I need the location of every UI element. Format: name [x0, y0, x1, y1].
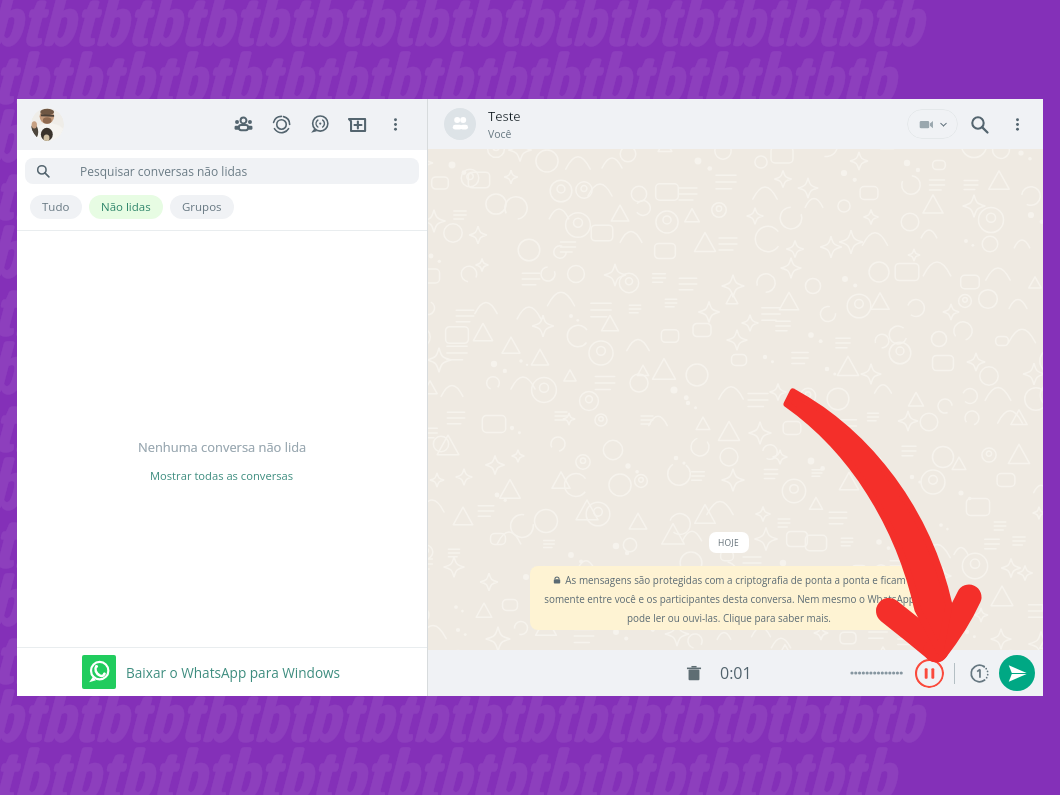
staticText: Pesquisar conversas não lidas [80, 163, 248, 179]
staticText: Tudo [42, 199, 70, 215]
staticText: somente entre você e os participantes de… [544, 592, 915, 605]
staticText: Você [488, 127, 512, 141]
button[interactable]: Não lidas [89, 195, 163, 219]
button[interactable]: Profile [31, 108, 64, 141]
button[interactable]: Tudo [30, 195, 82, 219]
button[interactable]: Menu [380, 109, 411, 140]
staticText: Baixar o WhatsApp para Windows [126, 663, 341, 682]
button[interactable]: Status [266, 109, 297, 140]
button[interactable]: Send [999, 655, 1035, 691]
button[interactable]: Delete [681, 660, 707, 686]
button[interactable]: Playback speed [965, 659, 993, 687]
staticText: pode ler ou ouvi-las. Clique para saber … [627, 611, 831, 624]
staticText: Mostrar todas as conversas [150, 468, 294, 483]
button[interactable]: Pause [914, 658, 944, 688]
button[interactable]: Baixar o WhatsApp para Windows [17, 648, 427, 696]
button[interactable]: Communities [228, 109, 259, 140]
button[interactable]: Search [964, 109, 995, 140]
button[interactable]: Pesquisar conversas não lidas [25, 158, 419, 184]
staticText: Nenhuma conversa não lida [138, 438, 307, 456]
button[interactable]: Grupos [170, 195, 234, 219]
staticText: Não lidas [101, 199, 151, 215]
button[interactable]: Channels [304, 109, 335, 140]
staticText: 0:01 [720, 662, 752, 684]
button[interactable]: New chat [342, 109, 373, 140]
button[interactable]: As mensagens são protegidas com a cripto… [530, 566, 928, 630]
staticText: HOJE [718, 537, 740, 549]
button[interactable]: Video call [907, 109, 958, 139]
staticText: As mensagens são protegidas com a cripto… [565, 573, 906, 586]
button[interactable]: Mostrar todas as conversas [150, 468, 294, 483]
button[interactable]: Menu [1002, 109, 1033, 140]
staticText: Grupos [182, 199, 222, 215]
staticText: Teste [488, 107, 521, 125]
